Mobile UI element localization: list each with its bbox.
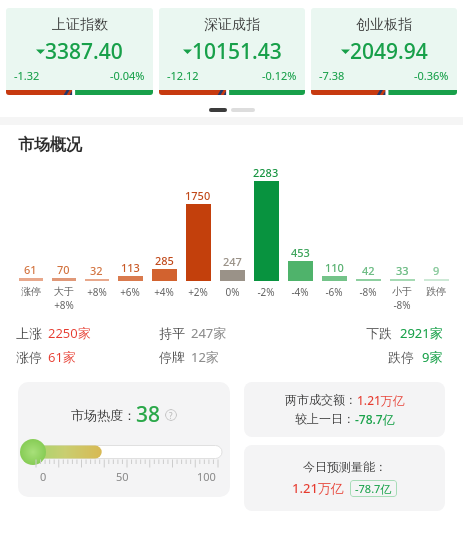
staticText: 42 [362, 263, 375, 278]
staticText: 市场热度： [71, 407, 136, 423]
staticText: 涨停 [21, 285, 41, 298]
staticText: ? [169, 410, 173, 421]
staticText: +6% [120, 285, 140, 299]
staticText: 50 [116, 469, 129, 484]
staticText: 2283 [253, 165, 279, 180]
button[interactable]: 两市成交额： [244, 382, 445, 437]
staticText: 33 [396, 263, 409, 278]
staticText: -2% [257, 285, 275, 299]
staticText: 上证指数 [52, 16, 108, 34]
staticText: -78.7亿 [355, 481, 392, 496]
staticText: 0 [40, 469, 47, 484]
button[interactable]: 持平 [159, 324, 303, 342]
staticText: -0.36% [414, 68, 449, 83]
staticText: 下跌 [366, 325, 392, 341]
button[interactable]: 创业板指 [311, 8, 457, 95]
staticText: -0.04% [110, 68, 145, 83]
staticText: -1.32 [14, 68, 40, 83]
staticText: 9 [433, 263, 440, 278]
button[interactable]: 下跌 [303, 324, 447, 342]
staticText: 1750 [185, 188, 211, 203]
staticText: 113 [121, 260, 140, 275]
staticText: 247 [223, 254, 242, 269]
other: 帮助 [165, 409, 177, 421]
staticText: +2% [188, 285, 208, 299]
staticText: 110 [325, 260, 344, 275]
staticText: 持平 [159, 325, 185, 341]
staticText: 创业板指 [356, 16, 412, 34]
staticText: +8% [87, 285, 107, 299]
staticText: 247家 [191, 324, 227, 342]
staticText: -78.7亿 [355, 411, 395, 427]
staticText: 小于 [392, 285, 412, 298]
button[interactable]: 涨停 [16, 348, 159, 366]
staticText: 2049.94 [350, 37, 428, 66]
button[interactable]: 停牌 [159, 348, 303, 366]
button[interactable]: 上涨 [16, 324, 159, 342]
button[interactable]: 跌停 [303, 348, 447, 366]
button[interactable]: 上证指数 [6, 8, 153, 95]
staticText: -7.38 [319, 68, 345, 83]
staticText: 上涨 [16, 325, 42, 341]
staticText: 今日预测量能： [303, 459, 387, 474]
staticText: 两市成交额： [285, 392, 357, 407]
staticText: 深证成指 [204, 16, 260, 34]
staticText: -12.12 [167, 68, 199, 83]
staticText: 10151.43 [192, 37, 282, 66]
staticText: 跌停 [426, 285, 446, 298]
staticText: 32 [90, 263, 103, 278]
staticText: 1.21万亿 [292, 479, 344, 497]
staticText: 3387.40 [45, 37, 123, 66]
staticText: 涨停 [16, 349, 42, 365]
staticText: -4% [291, 285, 309, 299]
staticText: 61家 [48, 348, 76, 366]
staticText: 38 [136, 400, 161, 429]
staticText: 2921家 [400, 324, 443, 342]
staticText: 市场概况 [18, 135, 82, 155]
staticText: 0% [225, 285, 240, 299]
staticText: 2250家 [48, 324, 91, 342]
button[interactable]: 市场热度： [18, 382, 230, 497]
staticText: 较上一日： [295, 411, 355, 426]
staticText: 100 [197, 469, 216, 484]
staticText: -8% [359, 285, 377, 299]
staticText: -0.12% [262, 68, 297, 83]
staticText: 70 [57, 262, 70, 277]
staticText: -6% [325, 285, 343, 299]
staticText: 大于 [54, 285, 74, 298]
staticText: -8% [393, 298, 411, 312]
staticText: 9家 [422, 348, 443, 366]
staticText: +8% [54, 298, 74, 312]
staticText: 61 [24, 262, 37, 277]
staticText: 1.21万亿 [357, 392, 405, 408]
staticText: 12家 [191, 348, 219, 366]
staticText: 453 [291, 245, 310, 260]
button[interactable]: 今日预测量能： [244, 445, 445, 511]
staticText: 285 [155, 253, 174, 268]
staticText: 跌停 [388, 349, 414, 365]
staticText: +4% [154, 285, 174, 299]
staticText: 停牌 [159, 349, 185, 365]
button[interactable]: 深证成指 [159, 8, 305, 95]
